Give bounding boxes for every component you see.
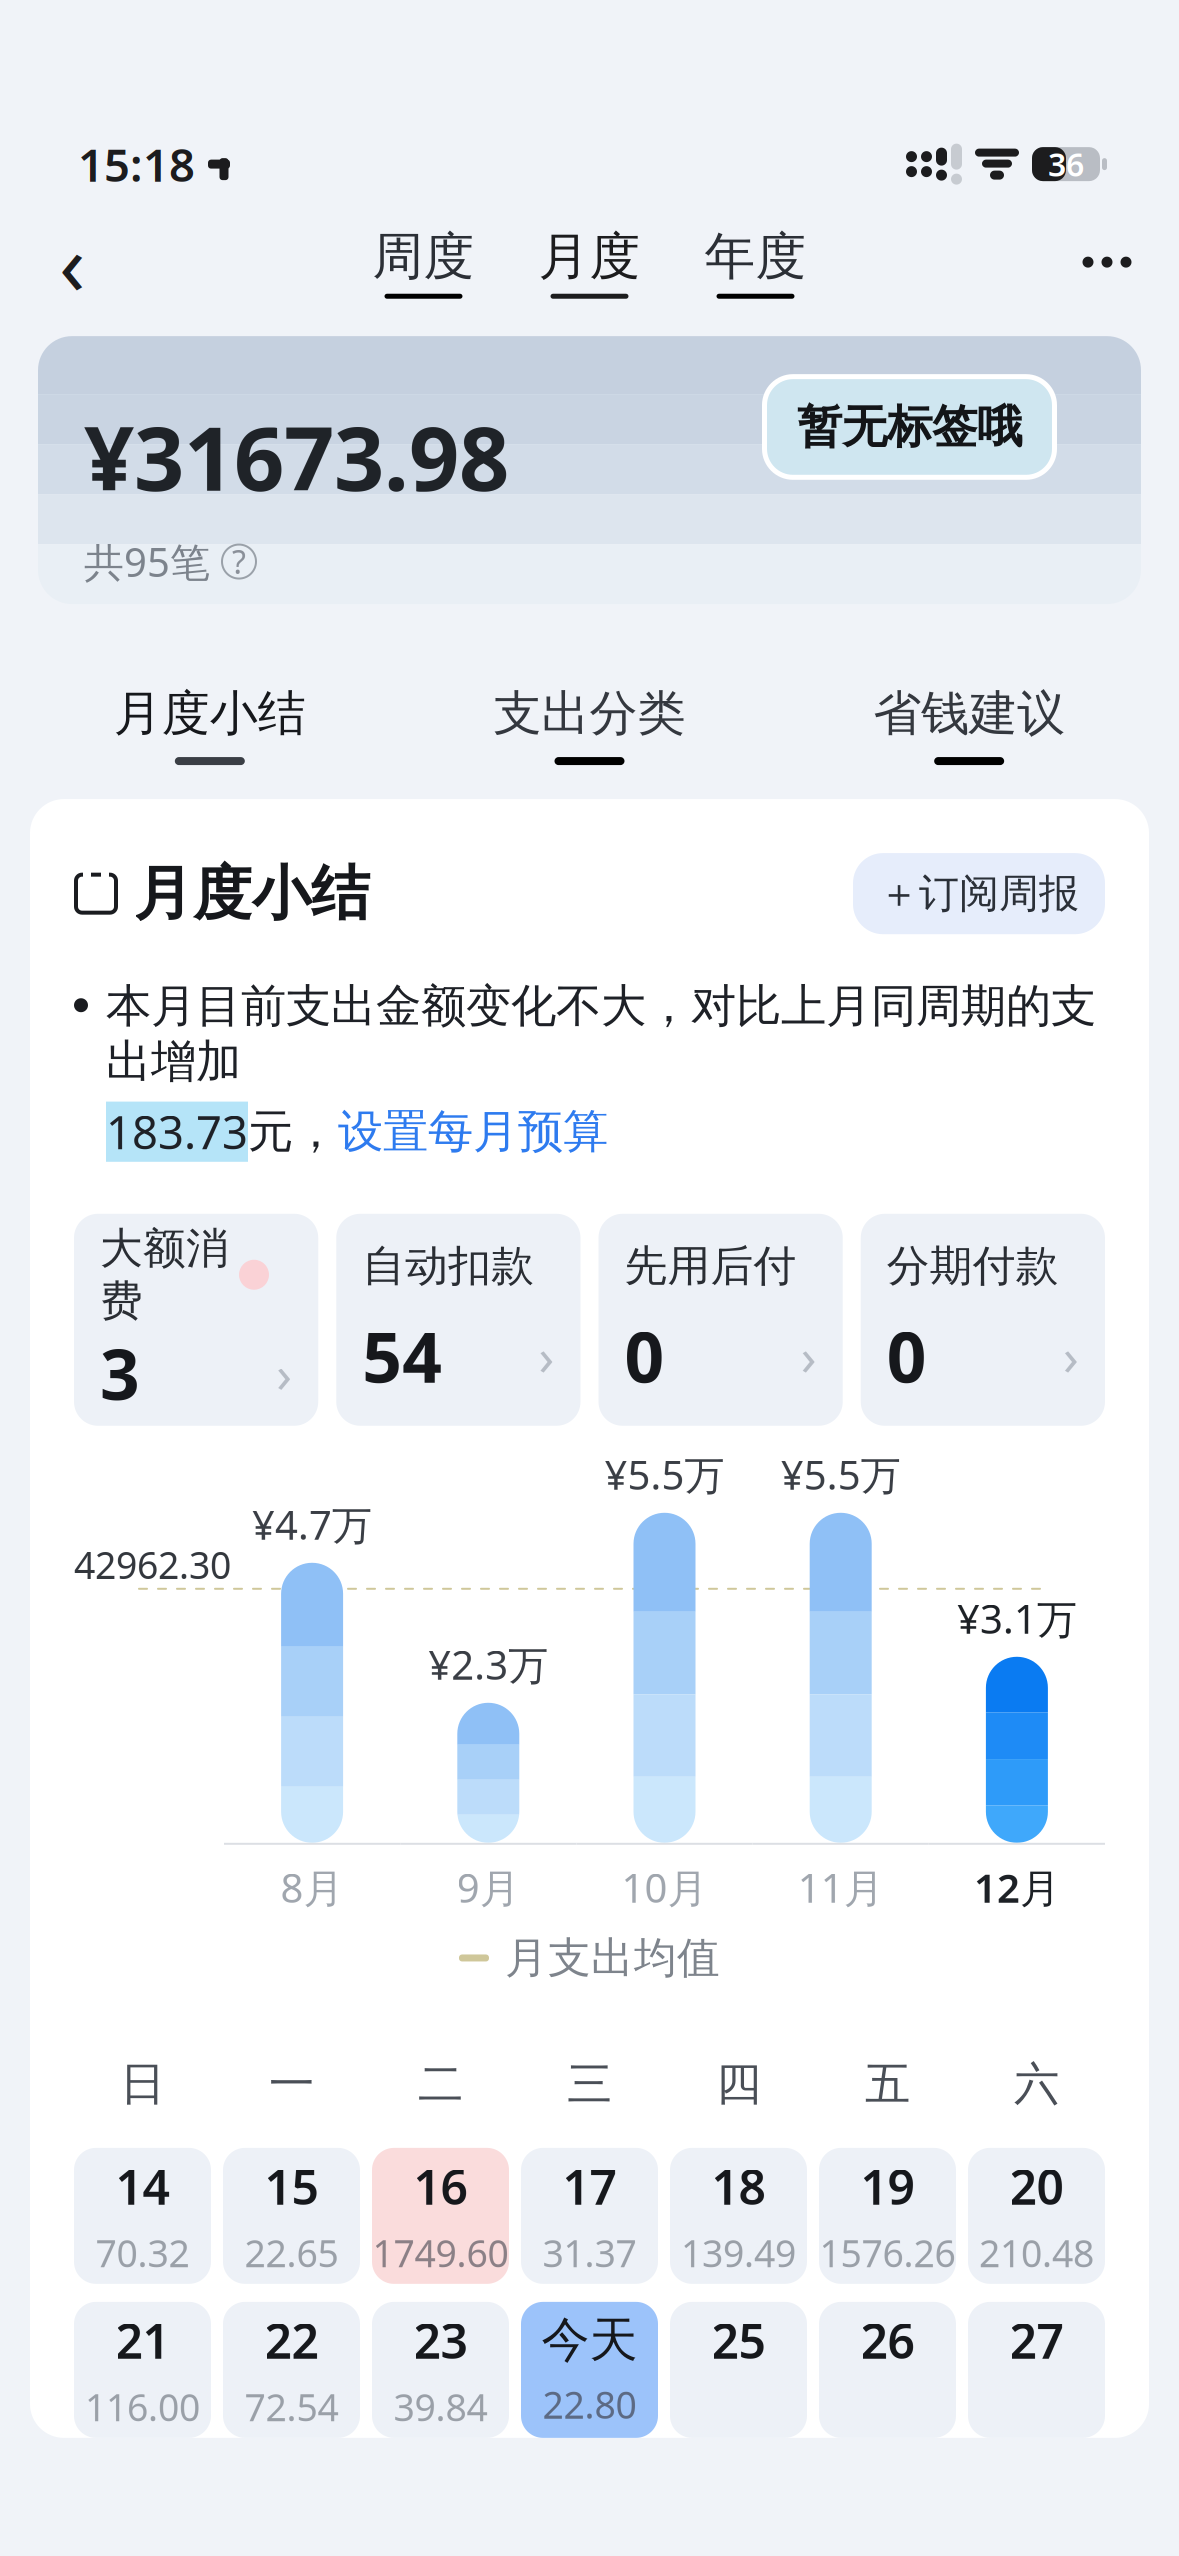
button[interactable]: 15 xyxy=(223,2148,360,2284)
staticText: 23 xyxy=(413,2308,467,2372)
button[interactable]: 月度 xyxy=(514,221,664,303)
staticText: 月度小结 xyxy=(134,858,370,930)
button[interactable]: 分期付款 xyxy=(861,1214,1105,1426)
staticText: ? xyxy=(232,540,246,583)
button[interactable]: 年度 xyxy=(680,221,830,303)
staticText: 116.00 xyxy=(85,2382,200,2432)
staticText: 54 xyxy=(362,1310,442,1402)
button[interactable]: 17 xyxy=(521,2148,658,2284)
button[interactable]: 月度小结 xyxy=(20,676,400,773)
staticText: 本月目前支出金额变化不大，对比上月同周期的支出增加 xyxy=(106,978,1096,1090)
staticText: 210.48 xyxy=(979,2228,1094,2278)
staticText: 21 xyxy=(115,2308,169,2372)
button[interactable]: 16 xyxy=(372,2148,509,2284)
button[interactable]: 暂无标签哦 xyxy=(762,374,1057,480)
button[interactable]: 18 xyxy=(670,2148,807,2284)
staticText: 14 xyxy=(115,2154,169,2218)
button[interactable]: 25 xyxy=(670,2302,807,2438)
staticText: 25 xyxy=(711,2308,765,2372)
staticText: 二 xyxy=(418,2056,463,2112)
staticText: ¥3.1万 xyxy=(957,1592,1077,1645)
button[interactable]: 先用后付 xyxy=(598,1214,843,1426)
staticText: 11月 xyxy=(798,1861,884,1914)
staticText: 自动扣款 xyxy=(362,1240,534,1292)
staticText: 22.80 xyxy=(542,2380,636,2429)
staticText: 暂无标签哦 xyxy=(797,399,1022,455)
staticText: ‹ xyxy=(59,205,85,319)
staticText: › xyxy=(276,1339,292,1407)
staticText: 9月 xyxy=(457,1861,520,1914)
button[interactable]: 26 xyxy=(819,2302,956,2438)
staticText: 19 xyxy=(860,2154,914,2218)
staticText: ¥5.5万 xyxy=(604,1448,724,1501)
staticText: 27 xyxy=(1009,2308,1063,2372)
staticText: 六 xyxy=(1014,2056,1059,2112)
staticText: 36 xyxy=(1048,143,1084,185)
button[interactable]: 20 xyxy=(968,2148,1105,2284)
staticText: 四 xyxy=(716,2056,761,2112)
staticText: 20 xyxy=(1009,2154,1063,2218)
staticText: 18 xyxy=(711,2154,765,2218)
staticText: 12月 xyxy=(974,1861,1060,1914)
staticText: 0 xyxy=(887,1310,927,1402)
staticText: 16 xyxy=(413,2154,467,2218)
staticText: 元， xyxy=(248,1104,338,1159)
staticText: 15:18 xyxy=(78,134,195,194)
staticText: 3 xyxy=(100,1327,140,1419)
staticText: 0 xyxy=(624,1310,664,1402)
staticText: 10月 xyxy=(621,1861,707,1914)
staticText: › xyxy=(801,1322,817,1389)
button[interactable]: 21 xyxy=(74,2302,211,2438)
button[interactable]: 支出分类 xyxy=(400,676,779,773)
button[interactable]: 自动扣款 xyxy=(336,1214,580,1426)
staticText: 39.84 xyxy=(393,2382,487,2432)
staticText: 139.49 xyxy=(681,2228,796,2278)
staticText: 42962.30 xyxy=(74,1540,231,1589)
staticText: 今天 xyxy=(541,2311,637,2370)
button[interactable]: 14 xyxy=(74,2148,211,2284)
button[interactable]: 返回 xyxy=(24,214,120,310)
button[interactable]: ＋订阅周报 xyxy=(853,853,1105,934)
button[interactable]: 说明 xyxy=(222,545,256,579)
button[interactable]: 今天 xyxy=(521,2302,658,2438)
staticText: 26 xyxy=(860,2308,914,2372)
staticText: 1749.60 xyxy=(372,2228,508,2278)
button[interactable]: 23 xyxy=(372,2302,509,2438)
button[interactable]: 周度 xyxy=(348,221,498,303)
staticText: 设置每月预算 xyxy=(338,1104,608,1159)
staticText: 70.32 xyxy=(95,2228,189,2278)
staticText: 年度 xyxy=(704,225,806,288)
staticText: › xyxy=(1063,1322,1079,1389)
button[interactable]: 22 xyxy=(223,2302,360,2438)
staticText: ¥31673.98 xyxy=(84,398,509,515)
staticText: 8月 xyxy=(281,1861,344,1914)
button[interactable]: 省钱建议 xyxy=(779,676,1159,773)
staticText: 大额消费 xyxy=(100,1222,229,1327)
staticText: ¥2.3万 xyxy=(428,1638,548,1691)
staticText: 月支出均值 xyxy=(505,1932,720,1984)
staticText: 先用后付 xyxy=(624,1240,796,1292)
staticText: › xyxy=(538,1322,554,1389)
button[interactable]: 大额消费 xyxy=(74,1214,318,1426)
staticText: ¥5.5万 xyxy=(781,1448,901,1501)
staticText: 17 xyxy=(562,2154,616,2218)
staticText: 一 xyxy=(269,2056,314,2112)
staticText: 分期付款 xyxy=(887,1240,1059,1292)
staticText: 周度 xyxy=(372,225,474,288)
staticText: 15 xyxy=(264,2154,318,2218)
staticText: 22 xyxy=(264,2308,318,2372)
staticText: 支出分类 xyxy=(493,684,685,743)
staticText: 省钱建议 xyxy=(873,684,1065,743)
button[interactable]: 设置每月预算 xyxy=(338,1104,608,1159)
staticText: 月度小结 xyxy=(114,684,306,743)
button[interactable]: 27 xyxy=(968,2302,1105,2438)
staticText: 三 xyxy=(567,2056,612,2112)
button[interactable]: 更多 xyxy=(1059,214,1155,310)
staticText: 日 xyxy=(120,2056,165,2112)
staticText: ¥4.7万 xyxy=(252,1498,372,1551)
button[interactable]: 19 xyxy=(819,2148,956,2284)
staticText: ＋订阅周报 xyxy=(879,869,1079,918)
staticText: 五 xyxy=(865,2056,910,2112)
staticText: 72.54 xyxy=(244,2382,338,2432)
staticText: 1576.26 xyxy=(819,2228,955,2278)
